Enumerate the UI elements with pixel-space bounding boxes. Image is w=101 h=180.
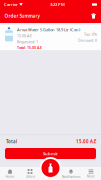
button[interactable]: Order water [39, 157, 61, 179]
button[interactable]: Submit [5, 148, 96, 159]
staticText: 15.00 A.E [17, 33, 32, 38]
staticText: Requested: 1 [17, 39, 38, 44]
staticText: 3:23 PM [50, 2, 65, 7]
staticText: Order Summary [4, 13, 39, 19]
staticText: Submit [43, 151, 58, 156]
staticText: Arwa Water 5 Gallon 18.9 Ltr (Can) [17, 27, 80, 32]
staticText: Total [6, 138, 17, 144]
staticText: Total: 15.00 A.E [17, 45, 42, 50]
button[interactable]: Notifications [61, 167, 81, 179]
button[interactable]: More [81, 167, 101, 178]
staticText: 15.00 A.E [76, 138, 96, 144]
staticText: Home [5, 175, 14, 179]
staticText: Carrier [4, 2, 18, 7]
button[interactable]: Home [0, 167, 20, 179]
staticText: Discount: 0 [78, 38, 97, 43]
staticText: More [87, 174, 95, 178]
button[interactable]: Orders [20, 167, 40, 179]
button[interactable]: Delete order [90, 12, 97, 20]
staticText: Tax: 0% [84, 32, 97, 37]
staticText: Notifications [62, 175, 80, 179]
staticText: Orders [25, 175, 34, 179]
